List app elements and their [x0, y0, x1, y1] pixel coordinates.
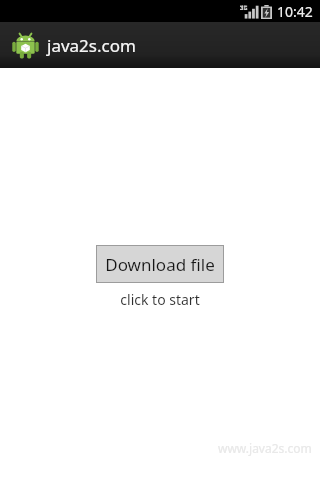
staticText: Download file [105, 253, 215, 276]
staticText: java2s.com [47, 34, 136, 57]
staticText: www.java2s.com [218, 440, 312, 456]
other: Battery charging [261, 5, 272, 19]
other: App icon [12, 32, 39, 59]
other: 3G signal strength [240, 5, 258, 19]
staticText: click to start [120, 290, 200, 309]
button[interactable]: Download file [96, 245, 224, 283]
staticText: 10:42 [277, 2, 313, 21]
